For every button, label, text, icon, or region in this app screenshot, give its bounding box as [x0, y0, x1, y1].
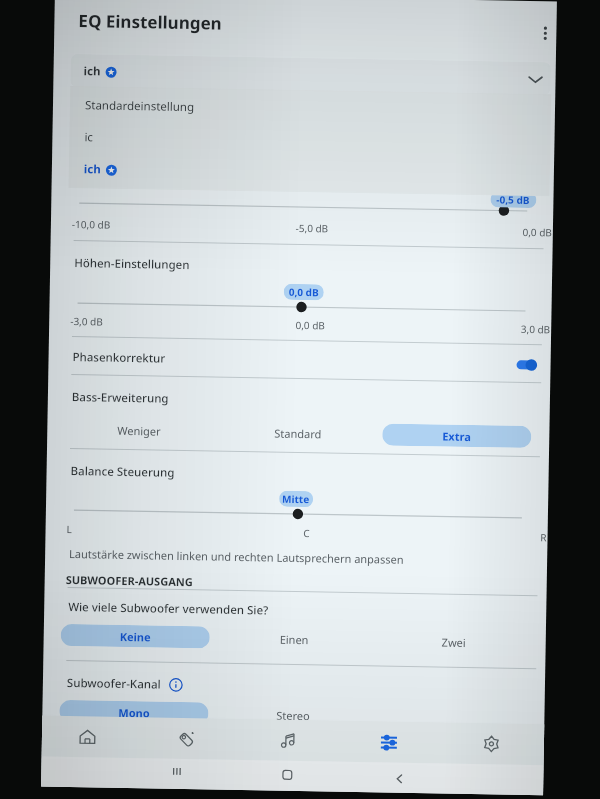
- button[interactable]: [59, 295, 562, 320]
- button[interactable]: [377, 705, 527, 724]
- button[interactable]: Info: [169, 678, 183, 692]
- staticText: 0,0 dB: [289, 285, 319, 299]
- staticText: Balance Steuerung: [70, 463, 175, 481]
- staticText: Lautstärke zwischen linken und rechten L…: [69, 546, 404, 567]
- button[interactable]: Stereo: [218, 703, 368, 721]
- staticText: Bass-Erweiterung: [72, 389, 169, 407]
- staticText: -3,0 dB: [70, 314, 230, 331]
- staticText: Einen: [280, 632, 309, 647]
- button[interactable]: Mono: [59, 700, 209, 718]
- button[interactable]: Home: [271, 761, 304, 789]
- staticText: Stereo: [276, 708, 310, 720]
- button[interactable]: Extra: [382, 423, 531, 448]
- button[interactable]: Equalizer: [367, 721, 411, 763]
- staticText: -5,0 dB: [232, 220, 392, 237]
- button[interactable]: ic: [69, 121, 551, 161]
- staticText: -0,5 dB: [496, 192, 530, 207]
- button[interactable]: Settings: [469, 723, 513, 765]
- staticText: R: [386, 528, 547, 544]
- button[interactable]: Einen: [219, 627, 369, 651]
- button[interactable]: Music: [266, 719, 310, 761]
- staticText: Zwei: [442, 634, 466, 650]
- staticText: Höhen-Einstellungen: [74, 255, 190, 273]
- staticText: EQ Einstellungen: [78, 9, 223, 35]
- button[interactable]: Back: [383, 764, 416, 793]
- staticText: Extra: [442, 428, 471, 444]
- button[interactable]: Home: [65, 716, 109, 758]
- staticText: 0,0 dB: [392, 223, 552, 239]
- button[interactable]: ich: [70, 54, 551, 95]
- staticText: Mitte: [282, 492, 310, 506]
- button[interactable]: More options: [528, 16, 563, 51]
- staticText: Weniger: [117, 423, 161, 439]
- staticText: Phasenkorrektur: [72, 349, 166, 367]
- staticText: Keine: [120, 629, 151, 644]
- staticText: ich: [83, 63, 101, 79]
- staticText: Wie viele Subwoofer verwenden Sie?: [68, 599, 269, 618]
- button[interactable]: [61, 195, 563, 220]
- staticText: Subwoofer-Kanal: [67, 675, 161, 693]
- button[interactable]: Weniger: [64, 418, 214, 442]
- button[interactable]: Zwei: [378, 629, 528, 654]
- staticText: Mono: [118, 705, 150, 717]
- staticText: L: [66, 522, 227, 539]
- staticText: ich: [84, 161, 101, 177]
- staticText: Standard: [274, 426, 322, 441]
- button[interactable]: Phasenkorrektur: [58, 341, 561, 382]
- staticText: ic: [84, 129, 94, 145]
- button[interactable]: [56, 502, 558, 527]
- button[interactable]: Keine: [61, 624, 210, 648]
- button[interactable]: Standardeinstellung: [70, 89, 551, 129]
- staticText: 3,0 dB: [390, 320, 550, 336]
- staticText: -10,0 dB: [72, 217, 232, 234]
- button[interactable]: Tag: [165, 718, 209, 759]
- staticText: Standardeinstellung: [85, 97, 195, 115]
- staticText: 0,0 dB: [230, 317, 390, 334]
- button[interactable]: ich: [69, 153, 550, 193]
- button[interactable]: Recents: [160, 757, 193, 785]
- button[interactable]: Standard: [223, 421, 372, 445]
- staticText: C: [226, 525, 387, 542]
- staticText: SUBWOOFER-AUSGANG: [66, 572, 194, 589]
